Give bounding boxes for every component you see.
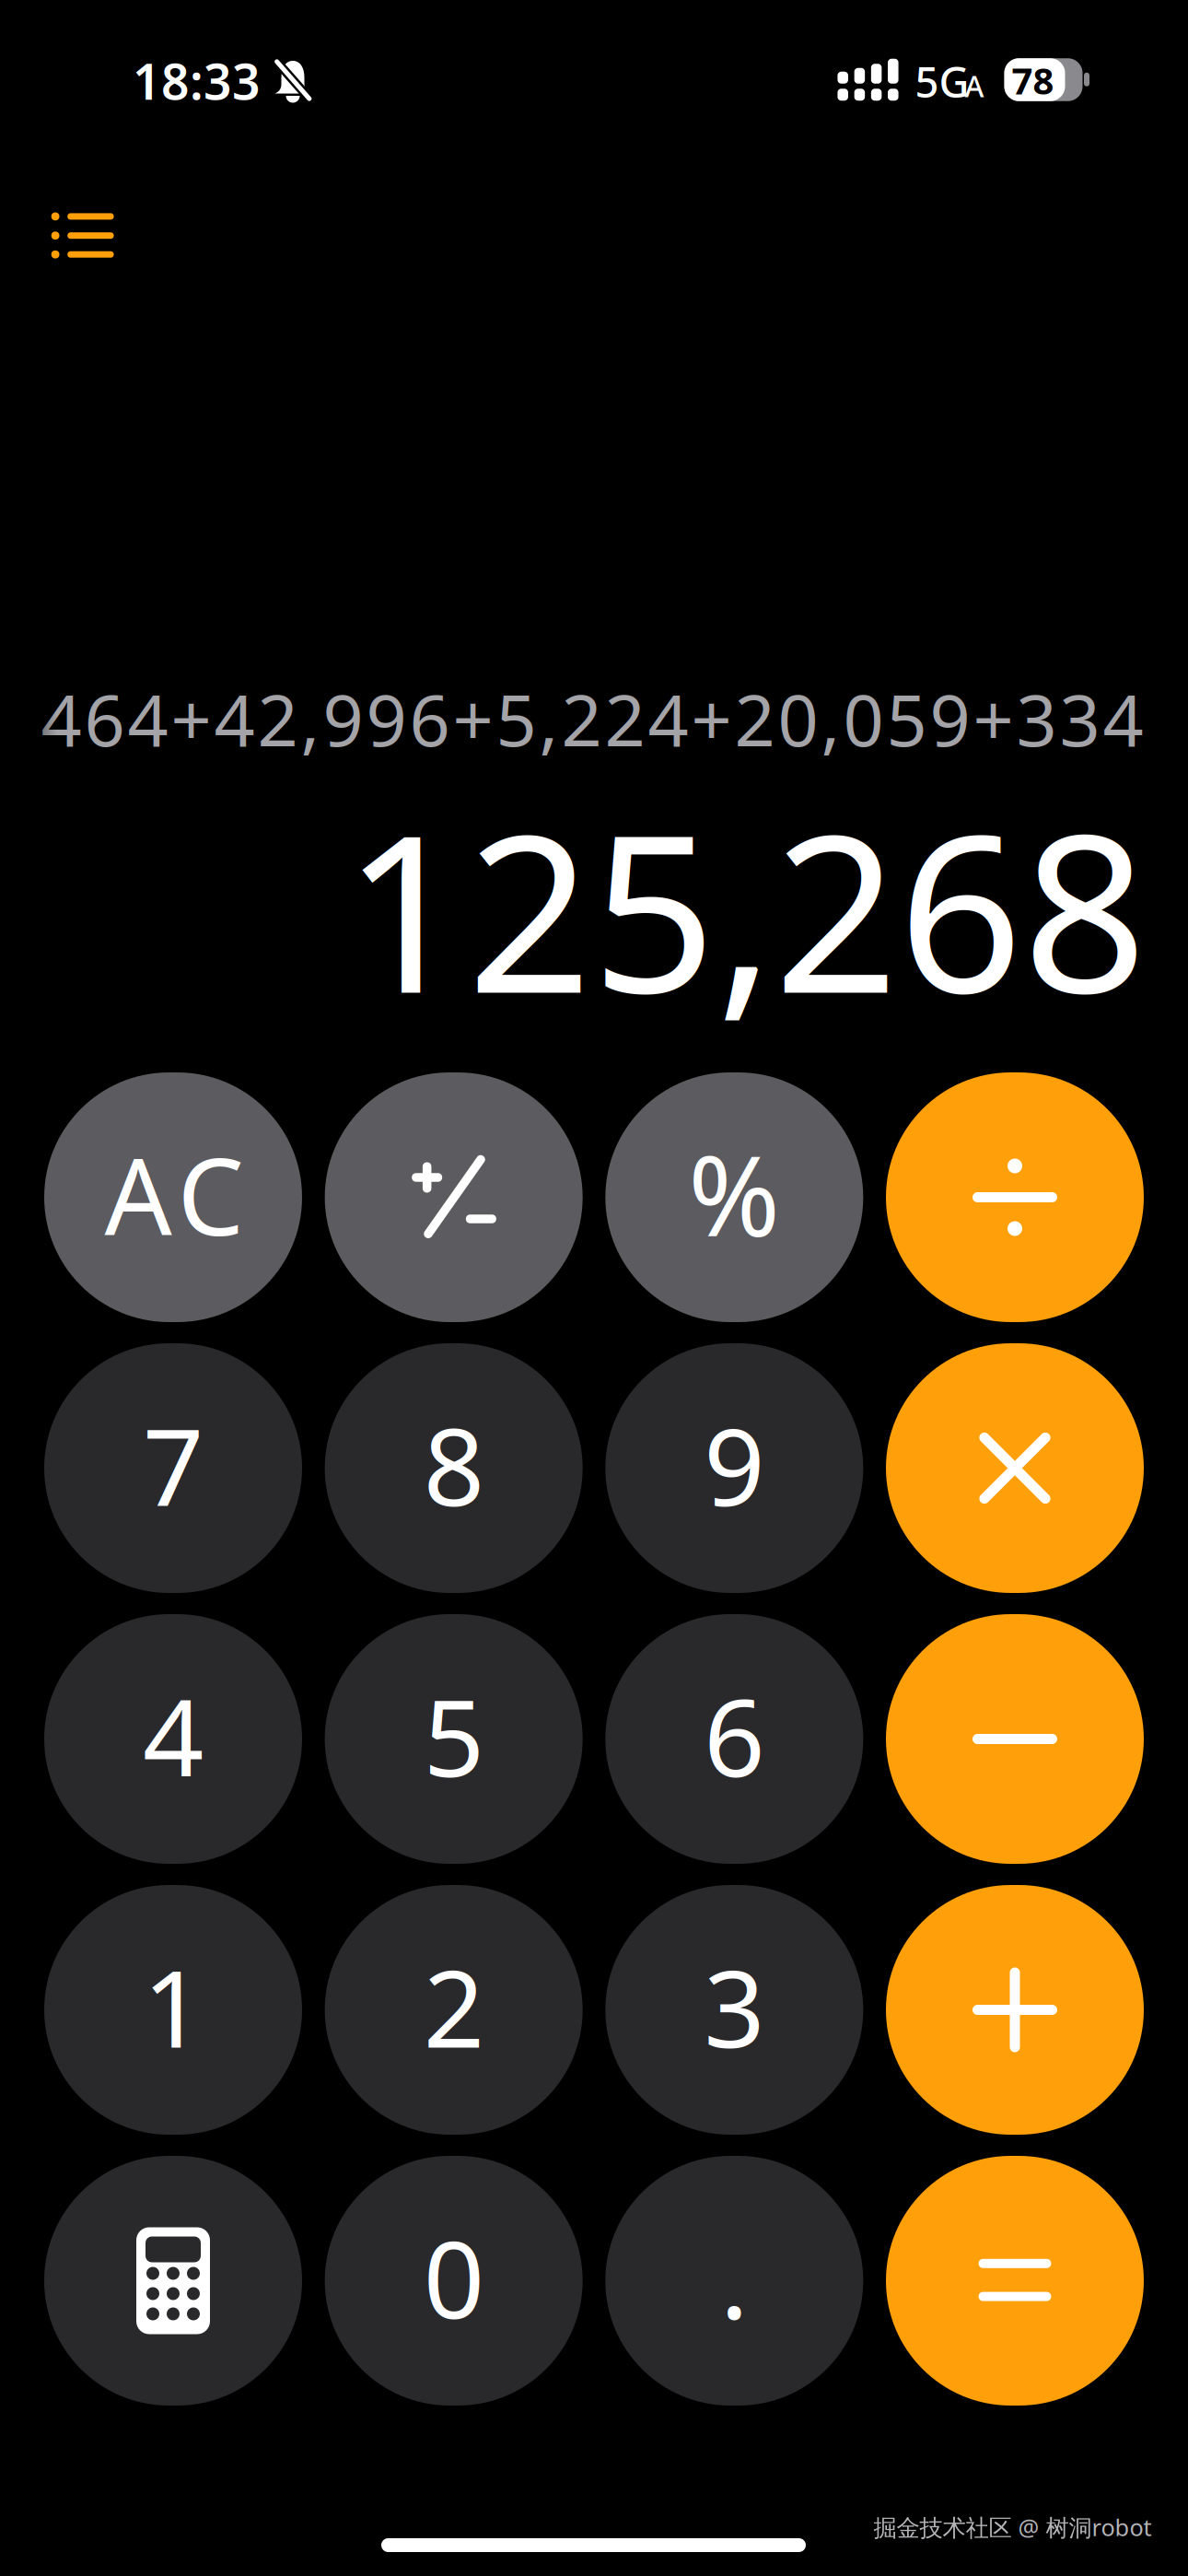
staticText: 1: [143, 1935, 204, 2077]
staticText: .: [720, 2206, 749, 2348]
staticText: 464+42,996+5,224+20,059+334: [41, 671, 1143, 766]
button[interactable]: Plus: [886, 1885, 1144, 2135]
staticText: 2: [423, 1935, 484, 2077]
staticText: 5: [423, 1664, 484, 1806]
button[interactable]: Multiply: [886, 1343, 1144, 1593]
staticText: A: [965, 66, 984, 105]
button[interactable]: History: [31, 191, 133, 280]
button[interactable]: 7: [44, 1343, 302, 1593]
staticText: 掘金技术社区 @ 树洞robot: [874, 2512, 1152, 2543]
button[interactable]: Equals: [886, 2156, 1144, 2406]
staticText: 7: [143, 1393, 204, 1535]
staticText: 0: [423, 2206, 484, 2348]
staticText: 78: [1012, 56, 1054, 105]
button[interactable]: 2: [325, 1885, 583, 2135]
button[interactable]: 3: [605, 1885, 863, 2135]
staticText: 8: [423, 1393, 484, 1535]
button[interactable]: .: [605, 2156, 863, 2406]
staticText: 18:33: [133, 48, 261, 113]
button[interactable]: Divide: [886, 1072, 1144, 1322]
staticText: 125,268: [343, 764, 1147, 1053]
button[interactable]: 0: [325, 2156, 583, 2406]
button[interactable]: Minus: [886, 1614, 1144, 1864]
button[interactable]: Plus Minus: [325, 1072, 583, 1322]
button[interactable]: 4: [44, 1614, 302, 1864]
button[interactable]: 9: [605, 1343, 863, 1593]
staticText: AC: [105, 1124, 244, 1265]
staticText: 5G: [915, 54, 969, 109]
staticText: 6: [704, 1664, 765, 1806]
staticText: 3: [704, 1935, 765, 2077]
button[interactable]: 8: [325, 1343, 583, 1593]
button[interactable]: 5: [325, 1614, 583, 1864]
button[interactable]: 6: [605, 1614, 863, 1864]
staticText: 4: [143, 1664, 204, 1806]
staticText: 9: [704, 1393, 765, 1535]
button[interactable]: Calculator: [44, 2156, 302, 2406]
staticText: %: [688, 1120, 780, 1267]
button[interactable]: 1: [44, 1885, 302, 2135]
button[interactable]: All Clear: [44, 1072, 302, 1322]
button[interactable]: Percent: [605, 1072, 863, 1322]
